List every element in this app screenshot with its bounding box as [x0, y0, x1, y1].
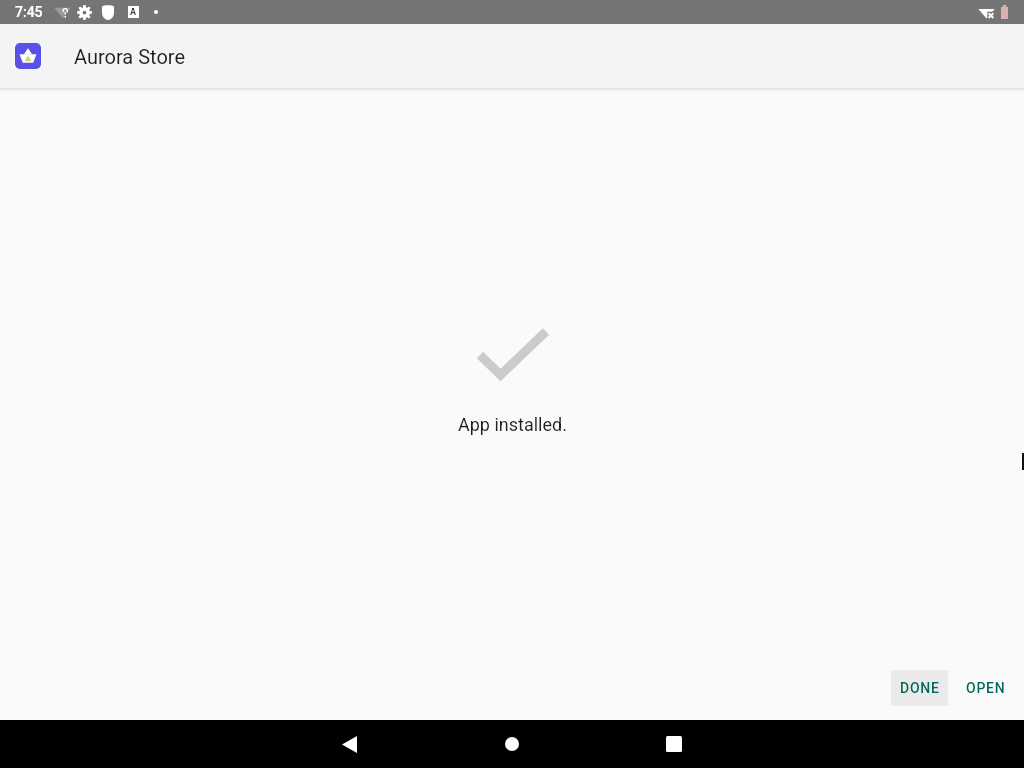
button[interactable]: OPEN [957, 670, 1014, 706]
staticText: A [130, 7, 137, 18]
button[interactable]: Recent apps [658, 720, 690, 768]
staticText: 7:45 [15, 4, 43, 20]
staticText: Aurora Store [74, 45, 186, 68]
staticText: OPEN [966, 680, 1006, 696]
button[interactable]: Back [333, 720, 365, 768]
staticText: DONE [900, 680, 940, 696]
button[interactable]: DONE [891, 670, 948, 706]
button[interactable]: Home [496, 720, 528, 768]
staticText: App installed. [458, 414, 567, 435]
